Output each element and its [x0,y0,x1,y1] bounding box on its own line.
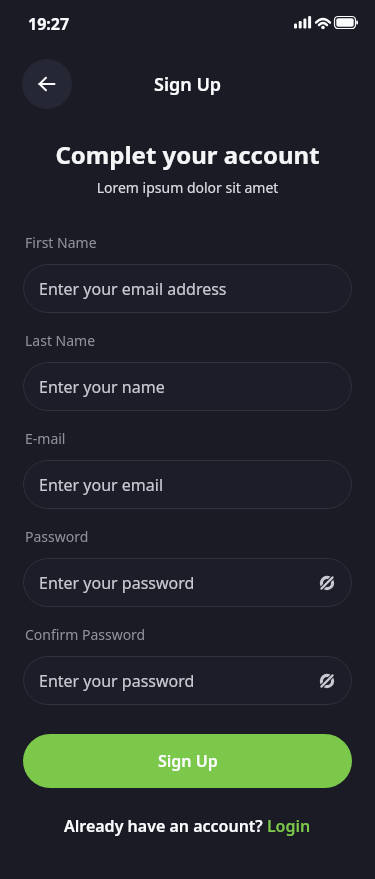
staticText: 19:27 [28,13,70,35]
staticText: Enter your email [39,474,164,496]
staticText: Enter your password [39,670,195,692]
button[interactable]: Enter your password [23,656,352,705]
staticText: Lorem ipsum dolor sit amet [0,178,375,197]
staticText: Last Name [25,331,96,350]
staticText: Sign Up [154,72,222,97]
button[interactable] [22,59,72,109]
staticText: Confirm Password [25,625,146,644]
button[interactable]: Sign Up [23,734,352,788]
button[interactable]: Enter your email address [23,264,352,313]
button[interactable]: Enter your password [23,558,352,607]
staticText: Enter your email address [39,278,227,300]
staticText: Enter your name [39,376,165,398]
staticText: Complet your account [0,138,375,171]
button[interactable]: Enter your name [23,362,352,411]
staticText: Sign Up [158,750,218,772]
staticText: E-mail [25,429,66,448]
staticText: Password [25,527,89,546]
button[interactable]: Enter your email [23,460,352,509]
staticText: Enter your password [39,572,195,594]
button[interactable]: Already have an account? Login [64,815,311,837]
staticText: First Name [25,233,97,252]
